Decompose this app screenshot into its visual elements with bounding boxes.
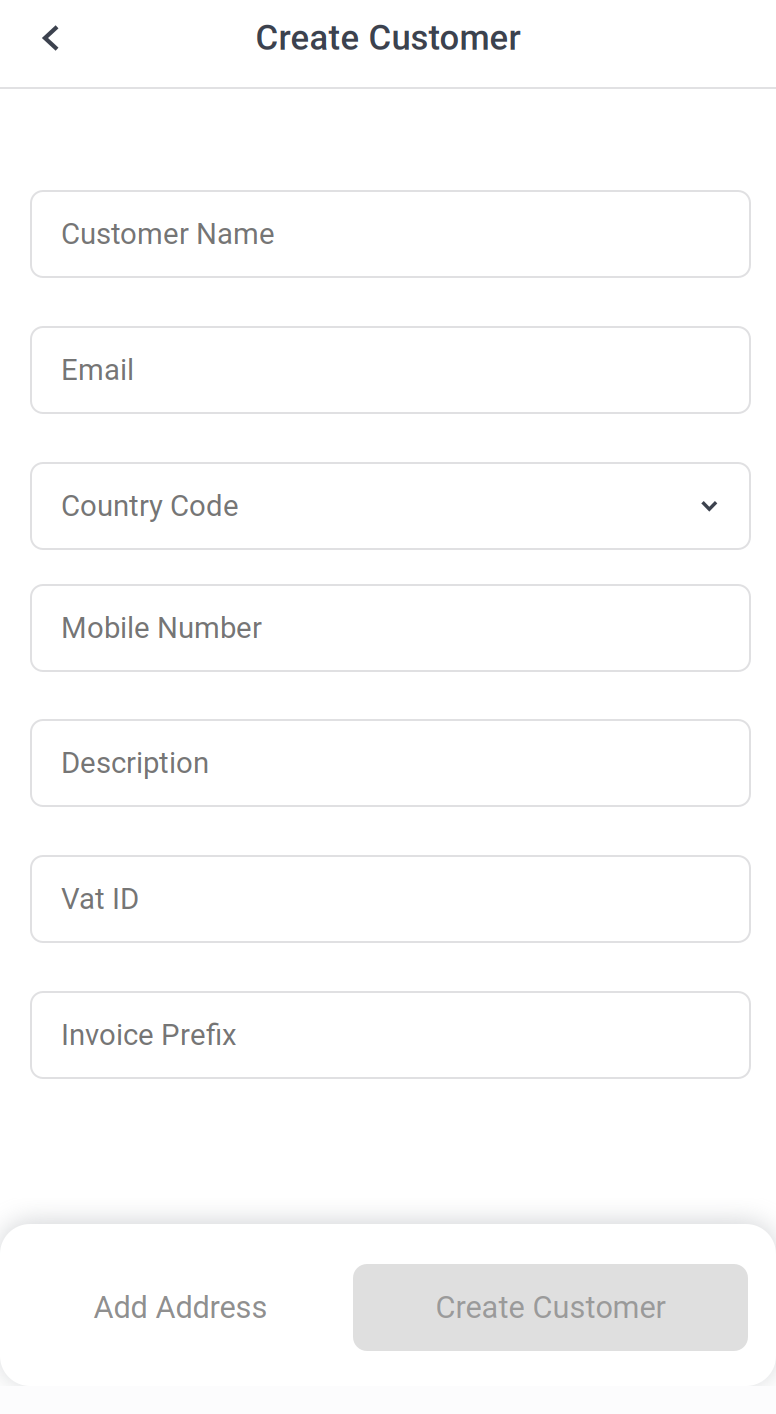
staticText: Create Customer [435, 1289, 665, 1325]
button[interactable]: Create Customer [353, 1264, 748, 1351]
button[interactable]: Email [31, 327, 750, 413]
staticText: Description [61, 746, 209, 780]
staticText: Email [61, 353, 134, 387]
staticText: Country Code [61, 489, 239, 523]
staticText: Create Customer [255, 18, 520, 58]
staticText: Mobile Number [61, 611, 262, 645]
button[interactable]: Vat ID [31, 856, 750, 942]
staticText: Add Address [93, 1289, 267, 1325]
staticText: Invoice Prefix [61, 1018, 237, 1052]
button[interactable]: Back [21, 8, 81, 68]
button[interactable]: Customer Name [31, 191, 750, 277]
button[interactable]: Add Address [47, 1264, 314, 1351]
button[interactable]: Invoice Prefix [31, 992, 750, 1078]
staticText: Customer Name [61, 217, 275, 251]
button[interactable]: Description [31, 720, 750, 806]
staticText: Vat ID [61, 882, 139, 916]
button[interactable]: Mobile Number [31, 585, 750, 671]
button[interactable]: Country Code [31, 463, 750, 549]
